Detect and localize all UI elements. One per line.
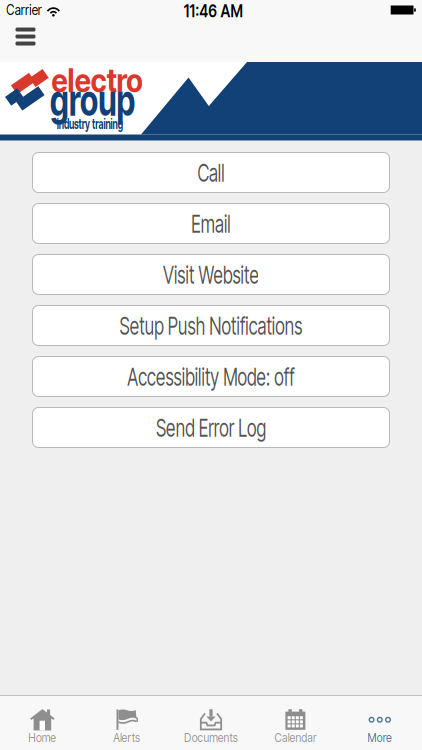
staticText: group	[34, 74, 151, 126]
staticText: Alerts	[111, 730, 143, 745]
staticText: Accessibility Mode: off	[88, 361, 334, 392]
button[interactable]: Visit Website	[32, 254, 389, 294]
staticText: electro	[46, 61, 149, 100]
staticText: Home	[26, 730, 59, 745]
button[interactable]: Accessibility Mode: off	[32, 356, 389, 396]
button[interactable]: Menu	[9, 22, 41, 50]
button[interactable]: Email	[32, 203, 389, 243]
staticText: Call	[191, 157, 231, 188]
staticText: More	[365, 730, 394, 745]
staticText: Send Error Log	[130, 412, 292, 443]
button[interactable]: Call	[32, 152, 389, 192]
staticText: industry training	[38, 115, 141, 132]
button[interactable]: Calendar	[253, 696, 338, 750]
staticText: 11:46 AM	[177, 0, 249, 21]
staticText: Email	[182, 208, 240, 239]
staticText: Documents	[179, 730, 243, 745]
staticText: Calendar	[270, 730, 320, 745]
button[interactable]: Alerts	[84, 696, 169, 750]
button[interactable]: Setup Push Notifications	[32, 305, 389, 345]
button[interactable]: Documents	[169, 696, 253, 750]
staticText: Carrier	[3, 1, 45, 18]
button[interactable]: Send Error Log	[32, 407, 389, 447]
button[interactable]: Home	[0, 696, 84, 750]
staticText: Setup Push Notifications	[76, 310, 345, 341]
staticText: Visit Website	[140, 259, 281, 290]
button[interactable]: More	[338, 696, 422, 750]
